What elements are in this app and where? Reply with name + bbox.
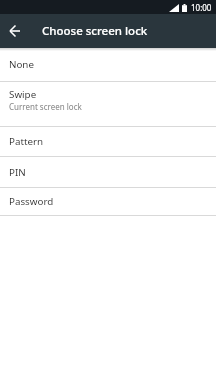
button[interactable]: PIN xyxy=(0,157,216,188)
button[interactable]: Swipe xyxy=(0,82,216,127)
button[interactable]: None xyxy=(0,48,216,82)
staticText: Password xyxy=(9,195,54,208)
button[interactable] xyxy=(9,25,21,37)
button[interactable]: Pattern xyxy=(0,127,216,157)
staticText: 10:00 xyxy=(191,2,212,13)
staticText: None xyxy=(9,58,34,71)
staticText: Pattern xyxy=(9,135,44,148)
staticText: Choose screen lock xyxy=(42,23,148,39)
staticText: PIN xyxy=(9,166,26,179)
staticText: Current screen lock xyxy=(9,101,82,112)
button[interactable]: Password xyxy=(0,188,216,216)
staticText: Swipe xyxy=(9,88,37,101)
